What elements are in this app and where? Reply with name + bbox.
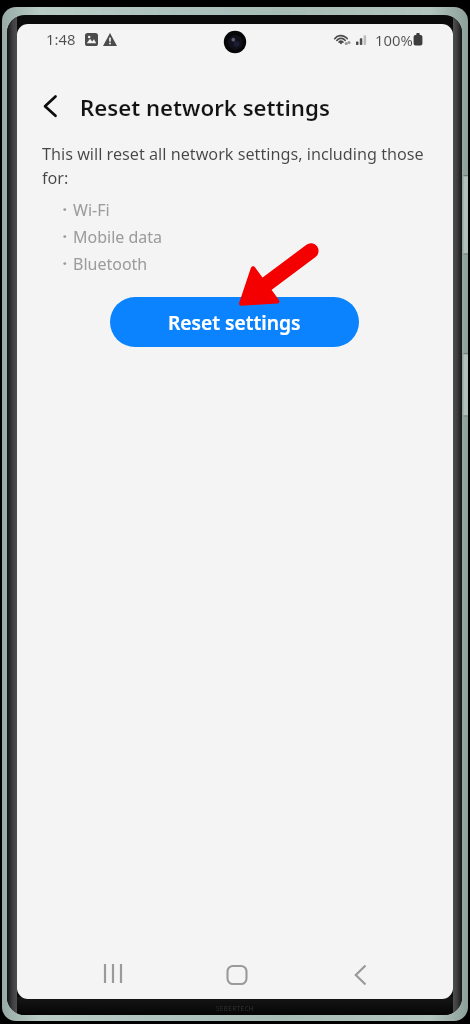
staticText: 1:48 xyxy=(46,29,76,49)
button[interactable]: Recent apps xyxy=(83,950,143,998)
staticText: Reset settings xyxy=(168,309,301,335)
staticText: Bluetooth xyxy=(73,253,148,275)
staticText: This will reset all network settings, in… xyxy=(42,143,430,189)
staticText: SEBERTECH xyxy=(216,1004,254,1013)
button[interactable]: Home xyxy=(207,950,267,998)
button[interactable]: Back xyxy=(27,89,67,123)
staticText: Wi-Fi xyxy=(73,199,110,221)
staticText: 100% xyxy=(375,30,413,50)
button[interactable]: Back xyxy=(331,950,391,998)
staticText: Reset network settings xyxy=(80,92,330,122)
button[interactable]: Reset settings xyxy=(110,297,359,347)
staticText: Mobile data xyxy=(73,226,163,248)
